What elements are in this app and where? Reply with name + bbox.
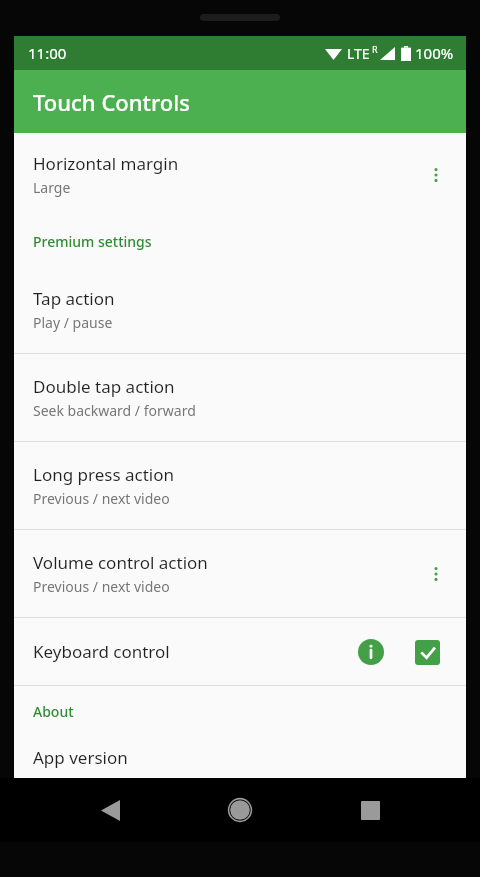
staticText: Touch Controls (33, 87, 190, 117)
button[interactable]: More options (418, 157, 454, 193)
button[interactable]: Information (354, 635, 388, 669)
staticText: Double tap action (33, 375, 175, 398)
button[interactable]: Back (92, 792, 128, 828)
button[interactable]: Volume control action (14, 530, 466, 617)
staticText: Previous / next video (33, 577, 170, 596)
staticText: Large (33, 178, 71, 197)
button[interactable]: App version (14, 736, 466, 778)
staticText: Volume control action (33, 551, 208, 574)
staticText: Previous / next video (33, 489, 170, 508)
staticText: Horizontal margin (33, 152, 179, 175)
staticText: About (33, 702, 74, 721)
button[interactable]: Horizontal margin (14, 133, 466, 216)
button[interactable]: Keyboard control (14, 618, 466, 685)
staticText: Long press action (33, 463, 175, 486)
staticText: Premium settings (33, 232, 152, 251)
staticText: LTE (347, 44, 370, 63)
staticText: App version (33, 746, 128, 769)
staticText: R (372, 43, 378, 55)
button[interactable]: Home (220, 790, 260, 830)
staticText: Tap action (33, 287, 115, 310)
button[interactable]: Keyboard control enabled (410, 635, 444, 669)
button[interactable]: Double tap action (14, 354, 466, 441)
button[interactable]: Long press action (14, 442, 466, 529)
staticText: Seek backward / forward (33, 401, 196, 420)
button[interactable]: More options (418, 556, 454, 592)
staticText: Keyboard control (33, 640, 354, 663)
button[interactable]: Recent apps (352, 792, 388, 828)
staticText: Play / pause (33, 313, 113, 332)
staticText: 11:00 (28, 43, 67, 63)
staticText: 100% (415, 43, 454, 63)
button[interactable]: Tap action (14, 266, 466, 353)
